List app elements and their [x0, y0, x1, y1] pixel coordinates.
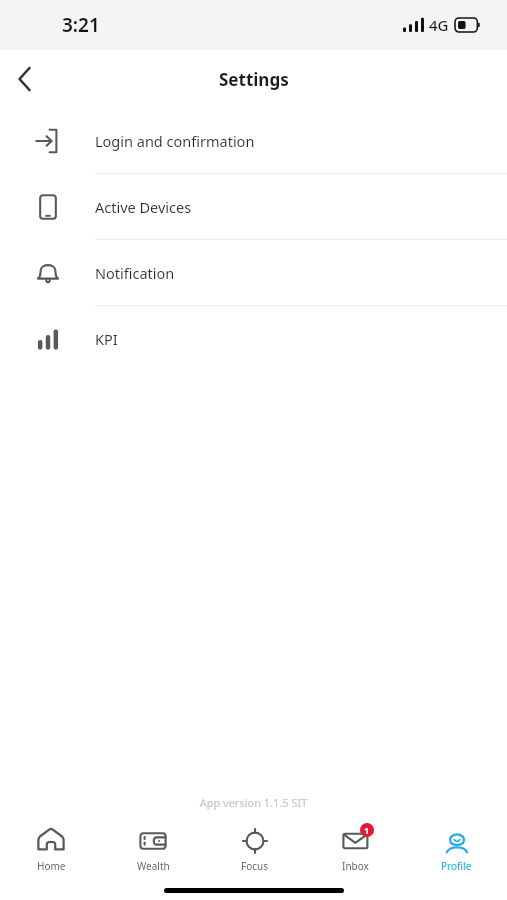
button[interactable]: Notification: [0, 240, 507, 305]
staticText: 1: [364, 824, 370, 836]
staticText: Login and confirmation: [95, 131, 255, 151]
button[interactable]: Active Devices: [0, 174, 507, 239]
button[interactable]: KPI: [0, 306, 507, 371]
staticText: Wealth: [137, 859, 170, 873]
button[interactable]: Back: [0, 55, 48, 103]
button[interactable]: Login and confirmation: [0, 108, 507, 173]
staticText: Active Devices: [95, 197, 192, 217]
button[interactable]: Home: [0, 818, 102, 880]
staticText: Home: [37, 859, 66, 873]
button[interactable]: 1: [305, 818, 406, 880]
button[interactable]: Profile: [406, 818, 507, 880]
staticText: Settings: [219, 68, 289, 91]
staticText: App version 1.1.5 SIT: [0, 795, 507, 810]
staticText: KPI: [95, 329, 118, 349]
button[interactable]: Wealth: [102, 818, 204, 880]
staticText: Profile: [441, 859, 472, 873]
staticText: 3:21: [62, 12, 100, 38]
staticText: Notification: [95, 263, 175, 283]
staticText: Focus: [241, 859, 269, 873]
staticText: Inbox: [342, 859, 369, 873]
button[interactable]: Focus: [204, 818, 305, 880]
staticText: 4G: [429, 15, 449, 35]
